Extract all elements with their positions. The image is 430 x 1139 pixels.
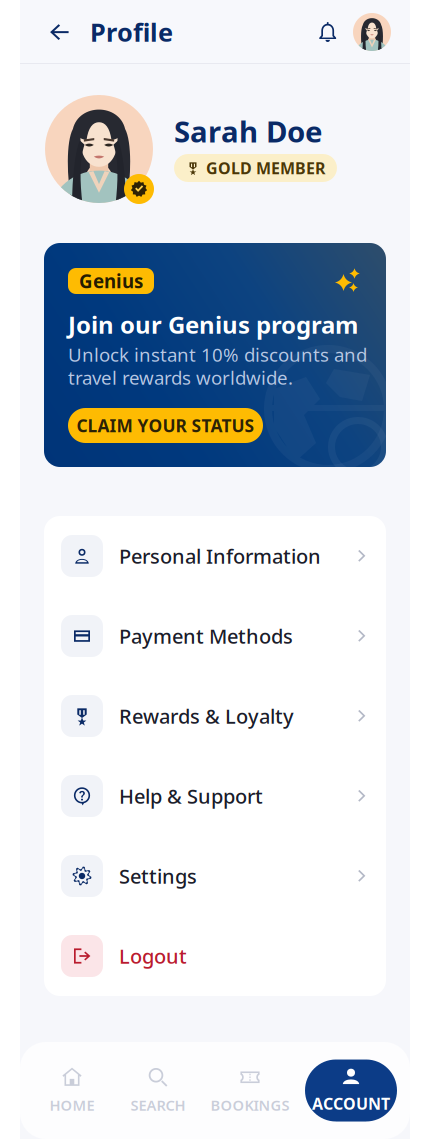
button[interactable]: HOME [30, 1059, 114, 1121]
button[interactable]: Settings [44, 836, 386, 916]
staticText: Help & Support [119, 783, 263, 809]
staticText: Personal Information [119, 543, 321, 569]
staticText: ACCOUNT [312, 1093, 390, 1114]
staticText: Sarah Doe [174, 111, 323, 150]
staticText: GOLD MEMBER [206, 157, 325, 179]
staticText: Rewards & Loyalty [119, 703, 294, 729]
staticText: Payment Methods [119, 623, 293, 649]
staticText: Logout [119, 943, 187, 969]
button[interactable]: SEARCH [114, 1059, 202, 1121]
button[interactable]: CLAIM YOUR STATUS [68, 408, 263, 443]
staticText: Join our Genius program [68, 309, 358, 340]
staticText: travel rewards worldwide. [68, 365, 293, 390]
staticText: CLAIM YOUR STATUS [76, 414, 254, 437]
staticText: SEARCH [130, 1095, 185, 1115]
staticText: Unlock instant 10% discounts and [68, 342, 367, 367]
staticText: Profile [90, 15, 173, 49]
button[interactable]: Payment Methods [44, 596, 386, 676]
button[interactable]: ACCOUNT [305, 1059, 397, 1121]
button[interactable]: Account [348, 10, 396, 54]
button[interactable]: Back [40, 10, 80, 54]
button[interactable]: Logout [44, 916, 386, 996]
staticText: Genius [79, 269, 143, 293]
staticText: HOME [49, 1095, 94, 1115]
button[interactable]: Personal Information [44, 516, 386, 596]
button[interactable]: Rewards & Loyalty [44, 676, 386, 756]
staticText: BOOKINGS [210, 1095, 289, 1115]
staticText: Settings [119, 863, 197, 889]
button[interactable]: BOOKINGS [202, 1059, 298, 1121]
button[interactable]: Help & Support [44, 756, 386, 836]
button[interactable]: Notifications [308, 10, 348, 54]
